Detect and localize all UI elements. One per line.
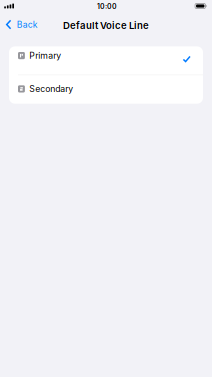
button[interactable]: Secondary <box>9 75 203 104</box>
staticText: Default Voice Line <box>63 20 149 31</box>
button[interactable]: Primary <box>9 46 203 75</box>
button[interactable]: Back <box>0 16 44 33</box>
staticText: Back <box>17 19 38 30</box>
staticText: Secondary <box>29 84 73 94</box>
staticText: 10:00 <box>97 2 117 11</box>
staticText: Primary <box>29 50 61 61</box>
